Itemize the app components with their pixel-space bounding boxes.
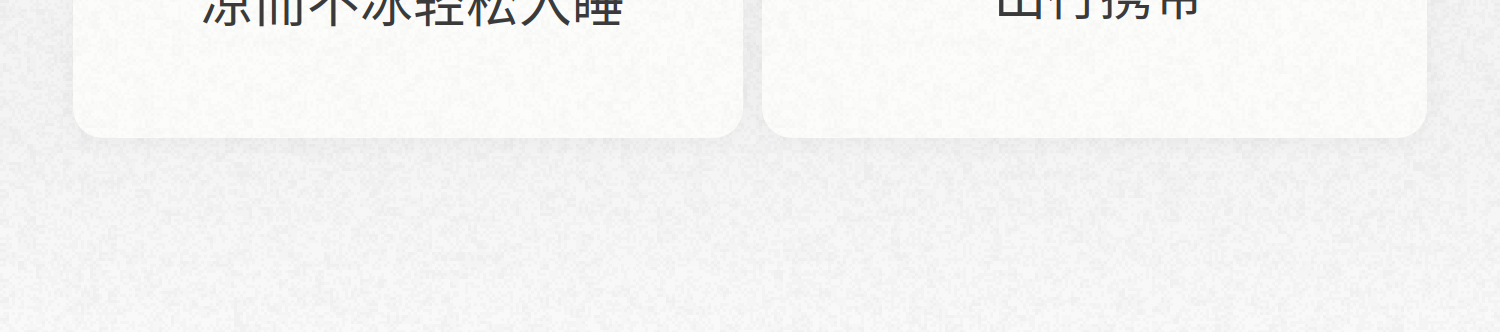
- button[interactable]: 凉而不冰轻松入睡: [73, 0, 743, 138]
- staticText: 凉而不冰轻松入睡: [201, 0, 625, 37]
- button[interactable]: 出行携带: [762, 0, 1427, 138]
- staticText: 出行携带: [993, 0, 1205, 30]
